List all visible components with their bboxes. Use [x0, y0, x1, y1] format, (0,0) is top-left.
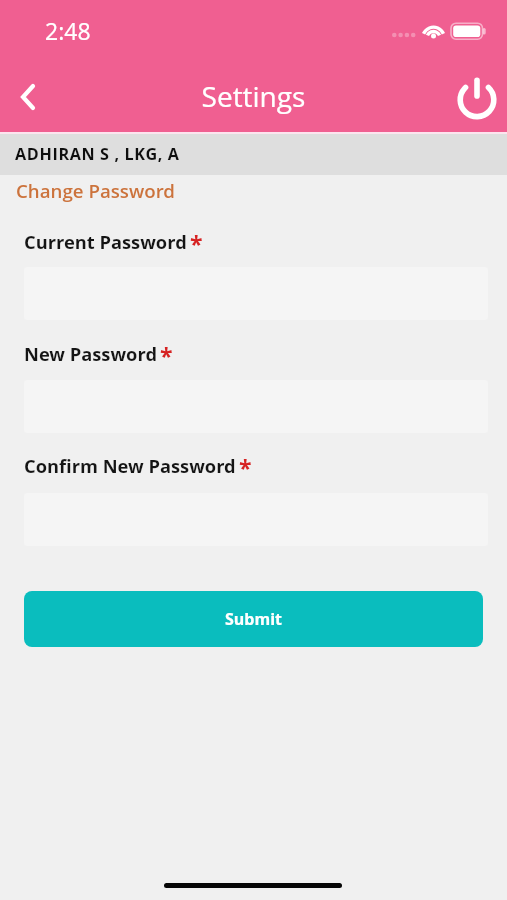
button[interactable]: Submit: [24, 591, 483, 647]
staticText: *: [160, 340, 173, 371]
staticText: 2:48: [45, 15, 91, 46]
staticText: Settings: [0, 77, 507, 115]
staticText: Current Password: [24, 229, 187, 254]
button[interactable]: Back: [0, 69, 56, 125]
button[interactable]: Logout: [447, 68, 507, 128]
staticText: Submit: [225, 608, 282, 630]
staticText: Confirm New Password: [24, 453, 236, 478]
staticText: *: [239, 452, 252, 483]
staticText: New Password: [24, 341, 157, 366]
staticText: ADHIRAN S , LKG, A: [15, 143, 180, 165]
staticText: *: [190, 228, 203, 259]
staticText: Change Password: [16, 178, 175, 203]
